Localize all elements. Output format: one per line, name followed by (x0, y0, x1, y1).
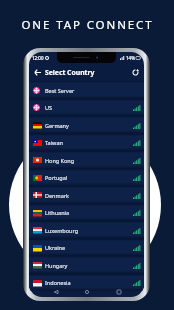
staticText: Lithuania (45, 209, 70, 216)
button[interactable]: Luxembourg (29, 221, 144, 239)
button[interactable]: Recents (113, 286, 124, 297)
button[interactable]: Portugal (29, 169, 144, 186)
staticText: ONE TAP CONNECT (21, 17, 154, 33)
staticText: Denmark (45, 192, 69, 199)
button[interactable]: Home (81, 286, 92, 297)
button[interactable]: Germany (29, 116, 144, 134)
button[interactable]: Refresh (129, 66, 141, 78)
staticText: Indonesia (45, 279, 71, 286)
staticText: Ukraine (45, 244, 66, 251)
staticText: US (45, 104, 53, 111)
button[interactable]: Taiwan (29, 134, 144, 151)
button[interactable]: Denmark (29, 186, 144, 204)
button[interactable]: US (29, 99, 144, 116)
staticText: Luxembourg (45, 227, 79, 234)
button[interactable]: Best Server (29, 81, 144, 99)
staticText: Germany (45, 122, 69, 129)
staticText: Hungary (45, 262, 68, 269)
button[interactable]: Back (50, 286, 61, 297)
button[interactable]: Lithuania (29, 204, 144, 221)
staticText: Select Country (45, 68, 95, 77)
staticText: Taiwan (45, 139, 63, 146)
staticText: 14% (126, 55, 135, 61)
button[interactable]: Ukraine (29, 239, 144, 256)
staticText: Hong Kong (45, 157, 75, 164)
button[interactable]: Hungary (29, 256, 144, 274)
staticText: Portugal (45, 174, 68, 181)
button[interactable]: Hong Kong (29, 151, 144, 169)
staticText: Best Server (45, 87, 75, 94)
button[interactable]: Indonesia (29, 274, 144, 291)
staticText: 12:00 (32, 55, 44, 61)
button[interactable]: Back (31, 66, 43, 78)
